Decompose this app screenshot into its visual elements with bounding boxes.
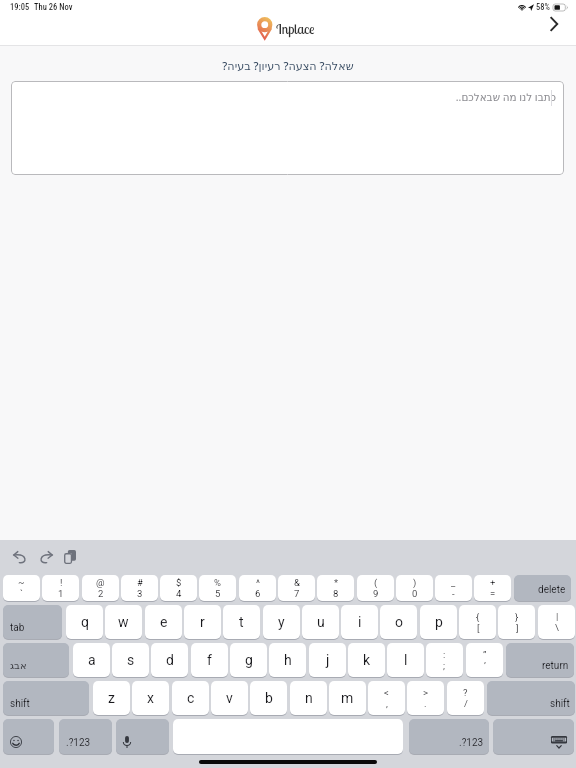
staticText: f [207,652,212,668]
staticText: - [452,588,455,599]
staticText: } [515,611,519,622]
staticText: 2 [98,588,104,599]
button[interactable]: כתבו לנו מה שבאלכם.. [11,81,564,175]
button[interactable]: } [498,605,535,639]
button[interactable]: ” [466,643,503,677]
button[interactable]: & [278,575,315,601]
button[interactable]: e [145,605,182,639]
staticText: d [166,652,174,668]
staticText: ’ [484,660,486,671]
button[interactable]: .?123 [59,719,112,754]
staticText: n [305,690,313,706]
button[interactable]: Hide keyboard [493,719,574,754]
button[interactable]: ) [396,575,433,601]
button[interactable]: y [263,605,300,639]
staticText: s [127,652,135,668]
button[interactable]: shift [487,681,575,715]
button[interactable]: p [420,605,457,639]
button[interactable]: j [309,643,346,677]
button[interactable]: u [302,605,339,639]
staticText: 5 [215,588,221,599]
staticText: @ [96,577,105,588]
staticText: שאלה? הצעה? רעיון? בעיה? [222,58,354,73]
button[interactable]: * [317,575,354,601]
button[interactable]: Paste [58,545,82,569]
staticText: t [239,614,244,630]
button[interactable]: shift [3,681,89,715]
button[interactable]: a [73,643,110,677]
staticText: b [265,690,273,706]
button[interactable]: delete [514,575,571,601]
button[interactable]: שאלה? הצעה? רעיון? בעיה? [0,55,576,75]
staticText: 9 [373,588,379,599]
button[interactable]: w [105,605,142,639]
staticText: k [363,652,371,668]
button[interactable]: tab [3,605,62,639]
button[interactable]: @ [82,575,119,601]
staticText: $ [176,577,182,588]
staticText: = [490,588,496,599]
staticText: g [245,652,253,668]
button[interactable]: f [191,643,228,677]
button[interactable]: z [93,681,130,715]
button[interactable]: + [474,575,511,601]
button[interactable]: d [151,643,188,677]
button[interactable]: q [66,605,103,639]
staticText: Thu 26 Nov [34,2,73,12]
button[interactable]: i [341,605,378,639]
staticText: 6 [255,588,261,599]
staticText: < [384,687,389,698]
button[interactable]: > [407,681,444,715]
button[interactable]: s [112,643,149,677]
button[interactable]: r [184,605,221,639]
button[interactable]: Redo [33,545,57,569]
staticText: % [214,577,221,588]
button[interactable]: ~ [3,575,40,601]
staticText: | [556,611,559,622]
button[interactable]: n [290,681,327,715]
staticText: 1 [58,588,64,599]
staticText: + [490,577,496,588]
button[interactable]: m [329,681,366,715]
button[interactable]: % [199,575,236,601]
button[interactable]: v [211,681,248,715]
button[interactable]: : [426,643,463,677]
button[interactable]: Emoji [3,719,54,754]
button[interactable]: c [172,681,209,715]
staticText: Inplace [276,20,315,38]
staticText: 8 [333,588,339,599]
button[interactable]: אבג [3,643,69,677]
staticText: \ [555,622,559,633]
staticText: # [137,577,143,588]
button[interactable]: return [506,643,574,677]
button[interactable]: ? [447,681,484,715]
button[interactable]: x [132,681,169,715]
button[interactable]: $ [160,575,197,601]
button[interactable]: ( [357,575,394,601]
button[interactable]: Next [541,13,565,35]
button[interactable]: g [230,643,267,677]
staticText: 7 [294,588,300,599]
button[interactable]: < [368,681,405,715]
button[interactable]: Dictate [116,719,169,754]
button[interactable]: h [269,643,306,677]
staticText: w [118,614,129,630]
button[interactable]: _ [435,575,472,601]
staticText: [ [477,622,480,633]
staticText: y [278,614,285,630]
button[interactable]: ! [42,575,79,601]
button[interactable]: Undo [8,545,32,569]
button[interactable]: # [121,575,158,601]
button[interactable]: t [223,605,260,639]
button[interactable]: o [380,605,417,639]
button[interactable]: k [348,643,385,677]
button[interactable]: { [459,605,496,639]
staticText: q [81,614,89,630]
button[interactable]: .?123 [409,719,489,754]
button[interactable]: | [538,605,575,639]
button[interactable]: l [387,643,424,677]
staticText: ] [516,622,519,633]
button[interactable]: b [250,681,287,715]
button[interactable]: ^ [239,575,276,601]
